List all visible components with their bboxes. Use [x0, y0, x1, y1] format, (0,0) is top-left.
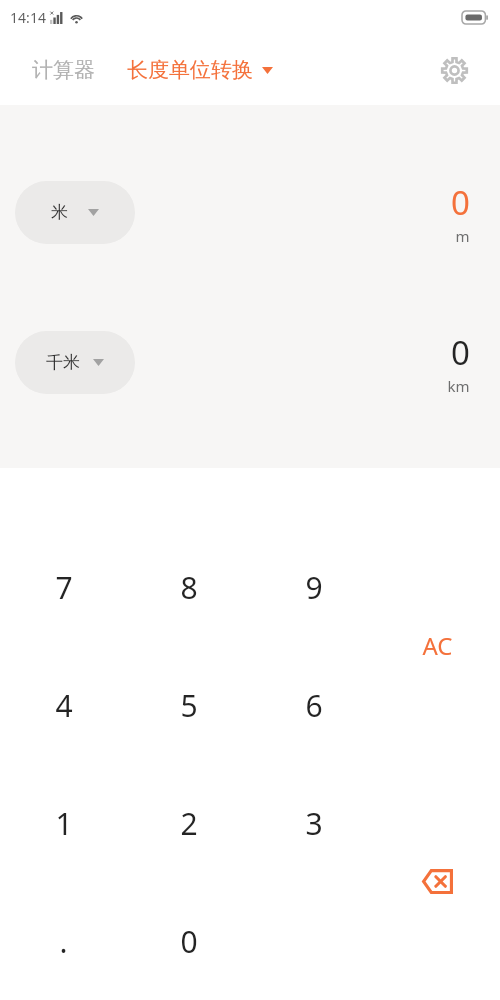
button[interactable]: 0	[447, 330, 470, 394]
button[interactable]: 1	[1, 764, 126, 882]
button[interactable]: 7	[1, 528, 126, 646]
button[interactable]: 千米	[15, 331, 135, 394]
button[interactable]: 6	[251, 646, 376, 764]
staticText: 3	[305, 803, 323, 844]
staticText: 2	[180, 803, 198, 844]
staticText: 0	[451, 180, 470, 225]
button[interactable]: 5	[126, 646, 251, 764]
staticText: 9	[305, 567, 323, 608]
button[interactable]: AC	[374, 586, 500, 704]
button[interactable]: 计算器	[26, 49, 101, 91]
staticText: 0	[180, 921, 198, 962]
staticText: 米	[51, 202, 68, 223]
staticText: 8	[180, 567, 198, 608]
staticText: 14:14	[10, 8, 46, 27]
staticText: .	[59, 921, 68, 962]
staticText: 长度单位转换	[127, 57, 253, 83]
button[interactable]: 9	[251, 528, 376, 646]
button[interactable]: Backspace	[374, 822, 500, 940]
staticText: AC	[422, 629, 453, 662]
staticText: 7	[55, 567, 73, 608]
button[interactable]: 米	[15, 181, 135, 244]
staticText: 6	[305, 685, 323, 726]
staticText: 0	[451, 330, 470, 375]
button[interactable]: 2	[126, 764, 251, 882]
staticText: 千米	[46, 352, 80, 373]
button[interactable]: 0	[126, 882, 251, 1000]
staticText: km	[447, 376, 470, 394]
button[interactable]: 8	[126, 528, 251, 646]
button[interactable]: 4	[1, 646, 126, 764]
staticText: 计算器	[32, 57, 95, 83]
staticText: 5	[180, 685, 198, 726]
staticText: m	[455, 226, 470, 244]
button[interactable]: 长度单位转换	[121, 49, 279, 91]
staticText: 4	[55, 685, 73, 726]
button[interactable]: .	[1, 882, 126, 1000]
button[interactable]: 3	[251, 764, 376, 882]
button[interactable]: Settings	[436, 52, 472, 88]
button[interactable]: 0	[451, 180, 470, 244]
staticText: 1	[55, 803, 73, 844]
